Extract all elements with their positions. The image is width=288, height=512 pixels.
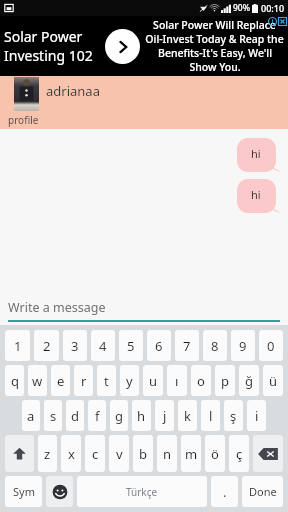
button[interactable]: 4 — [91, 330, 115, 361]
button[interactable]: 6 — [147, 330, 171, 361]
staticText: 4 — [99, 337, 107, 355]
button[interactable]: w — [28, 365, 47, 396]
other: Backspace — [257, 447, 279, 461]
button[interactable]: Sym — [5, 476, 42, 507]
staticText: h — [137, 407, 146, 425]
button[interactable]: t — [97, 365, 116, 396]
button[interactable]: Close ad — [278, 17, 287, 26]
staticText: ü — [269, 372, 278, 390]
button[interactable]: 8 — [203, 330, 227, 361]
staticText: q — [11, 372, 19, 390]
button[interactable]: p — [215, 365, 235, 396]
button[interactable]: d — [66, 400, 84, 431]
staticText: t — [104, 372, 109, 390]
button[interactable]: Write a message — [0, 299, 288, 325]
button[interactable]: Open ad — [105, 29, 140, 64]
staticText: l — [209, 407, 213, 425]
button[interactable]: g — [110, 400, 128, 431]
button[interactable]: 5 — [119, 330, 143, 361]
other: Shift — [12, 446, 27, 461]
button[interactable]: Profile photo — [0, 76, 288, 129]
button[interactable]: r — [74, 365, 93, 396]
button[interactable]: ç — [229, 435, 249, 472]
staticText: 3 — [71, 337, 79, 355]
button[interactable]: l — [201, 400, 220, 431]
staticText: Solar Power Will Replace — [153, 18, 276, 32]
button[interactable]: q — [5, 365, 24, 396]
staticText: 0 — [267, 337, 275, 355]
button[interactable]: Shift — [5, 435, 34, 472]
staticText: Benefits-It's Easy, We'll — [158, 46, 272, 60]
staticText: profile — [8, 113, 39, 127]
staticText: a — [27, 407, 35, 425]
staticText: ş — [230, 407, 237, 425]
button[interactable]: 1 — [5, 330, 30, 361]
button[interactable]: x — [61, 435, 81, 472]
button[interactable]: b — [133, 435, 153, 472]
staticText: v — [116, 445, 123, 463]
staticText: ö — [211, 445, 219, 463]
button[interactable]: 0 — [259, 330, 283, 361]
staticText: 90% — [233, 2, 250, 14]
button[interactable]: f — [88, 400, 106, 431]
button[interactable]: 9 — [231, 330, 255, 361]
button[interactable]: ö — [205, 435, 225, 472]
staticText: b — [139, 445, 147, 463]
button[interactable]: ü — [263, 365, 283, 396]
button[interactable]: k — [178, 400, 197, 431]
button[interactable]: 3 — [63, 330, 87, 361]
button[interactable]: Backspace — [253, 435, 283, 472]
staticText: o — [197, 372, 205, 390]
staticText: ğ — [245, 372, 253, 390]
button[interactable]: i — [247, 400, 266, 431]
staticText: n — [163, 445, 172, 463]
button[interactable]: Advertisement — [0, 16, 288, 76]
button[interactable]: u — [143, 365, 163, 396]
staticText: hi — [251, 187, 261, 202]
button[interactable]: n — [157, 435, 177, 472]
staticText: s — [50, 407, 57, 425]
button[interactable]: v — [109, 435, 129, 472]
button[interactable]: Ad info — [268, 17, 277, 26]
staticText: j — [163, 407, 167, 425]
button[interactable]: Done — [242, 476, 283, 507]
button[interactable]: z — [38, 435, 57, 472]
button[interactable]: e — [51, 365, 70, 396]
staticText: c — [92, 445, 99, 463]
button[interactable]: ğ — [239, 365, 259, 396]
staticText: 5 — [127, 337, 135, 355]
button[interactable]: h — [132, 400, 151, 431]
button[interactable]: j — [155, 400, 174, 431]
staticText: . — [223, 483, 227, 501]
button[interactable]: o — [191, 365, 211, 396]
button[interactable]: 2 — [34, 330, 59, 361]
staticText: Sym — [13, 484, 35, 499]
button[interactable]: s — [44, 400, 62, 431]
staticText: f — [95, 407, 100, 425]
button[interactable]: . — [211, 476, 238, 507]
button[interactable]: y — [120, 365, 139, 396]
button[interactable]: 7 — [175, 330, 199, 361]
staticText: hi — [251, 146, 261, 161]
staticText: 1 — [14, 337, 22, 355]
staticText: Write a message — [8, 299, 106, 316]
staticText: z — [44, 445, 51, 463]
staticText: Oil-Invest Today & Reap the — [145, 32, 284, 46]
staticText: u — [149, 372, 158, 390]
staticText: 6 — [155, 337, 163, 355]
button[interactable]: ı — [167, 365, 187, 396]
staticText: Solar Power — [4, 27, 83, 46]
staticText: g — [115, 407, 123, 425]
staticText: p — [221, 372, 229, 390]
button[interactable]: Profile photo — [14, 77, 39, 111]
staticText: 8 — [211, 337, 219, 355]
staticText: 9 — [239, 337, 247, 355]
button[interactable]: Türkçe — [77, 476, 207, 507]
button[interactable]: Emoji — [46, 476, 73, 507]
staticText: w — [32, 372, 43, 390]
button[interactable]: c — [85, 435, 105, 472]
button[interactable]: ş — [224, 400, 243, 431]
staticText: adrianaa — [46, 82, 100, 100]
button[interactable]: a — [22, 400, 40, 431]
button[interactable]: m — [181, 435, 201, 472]
